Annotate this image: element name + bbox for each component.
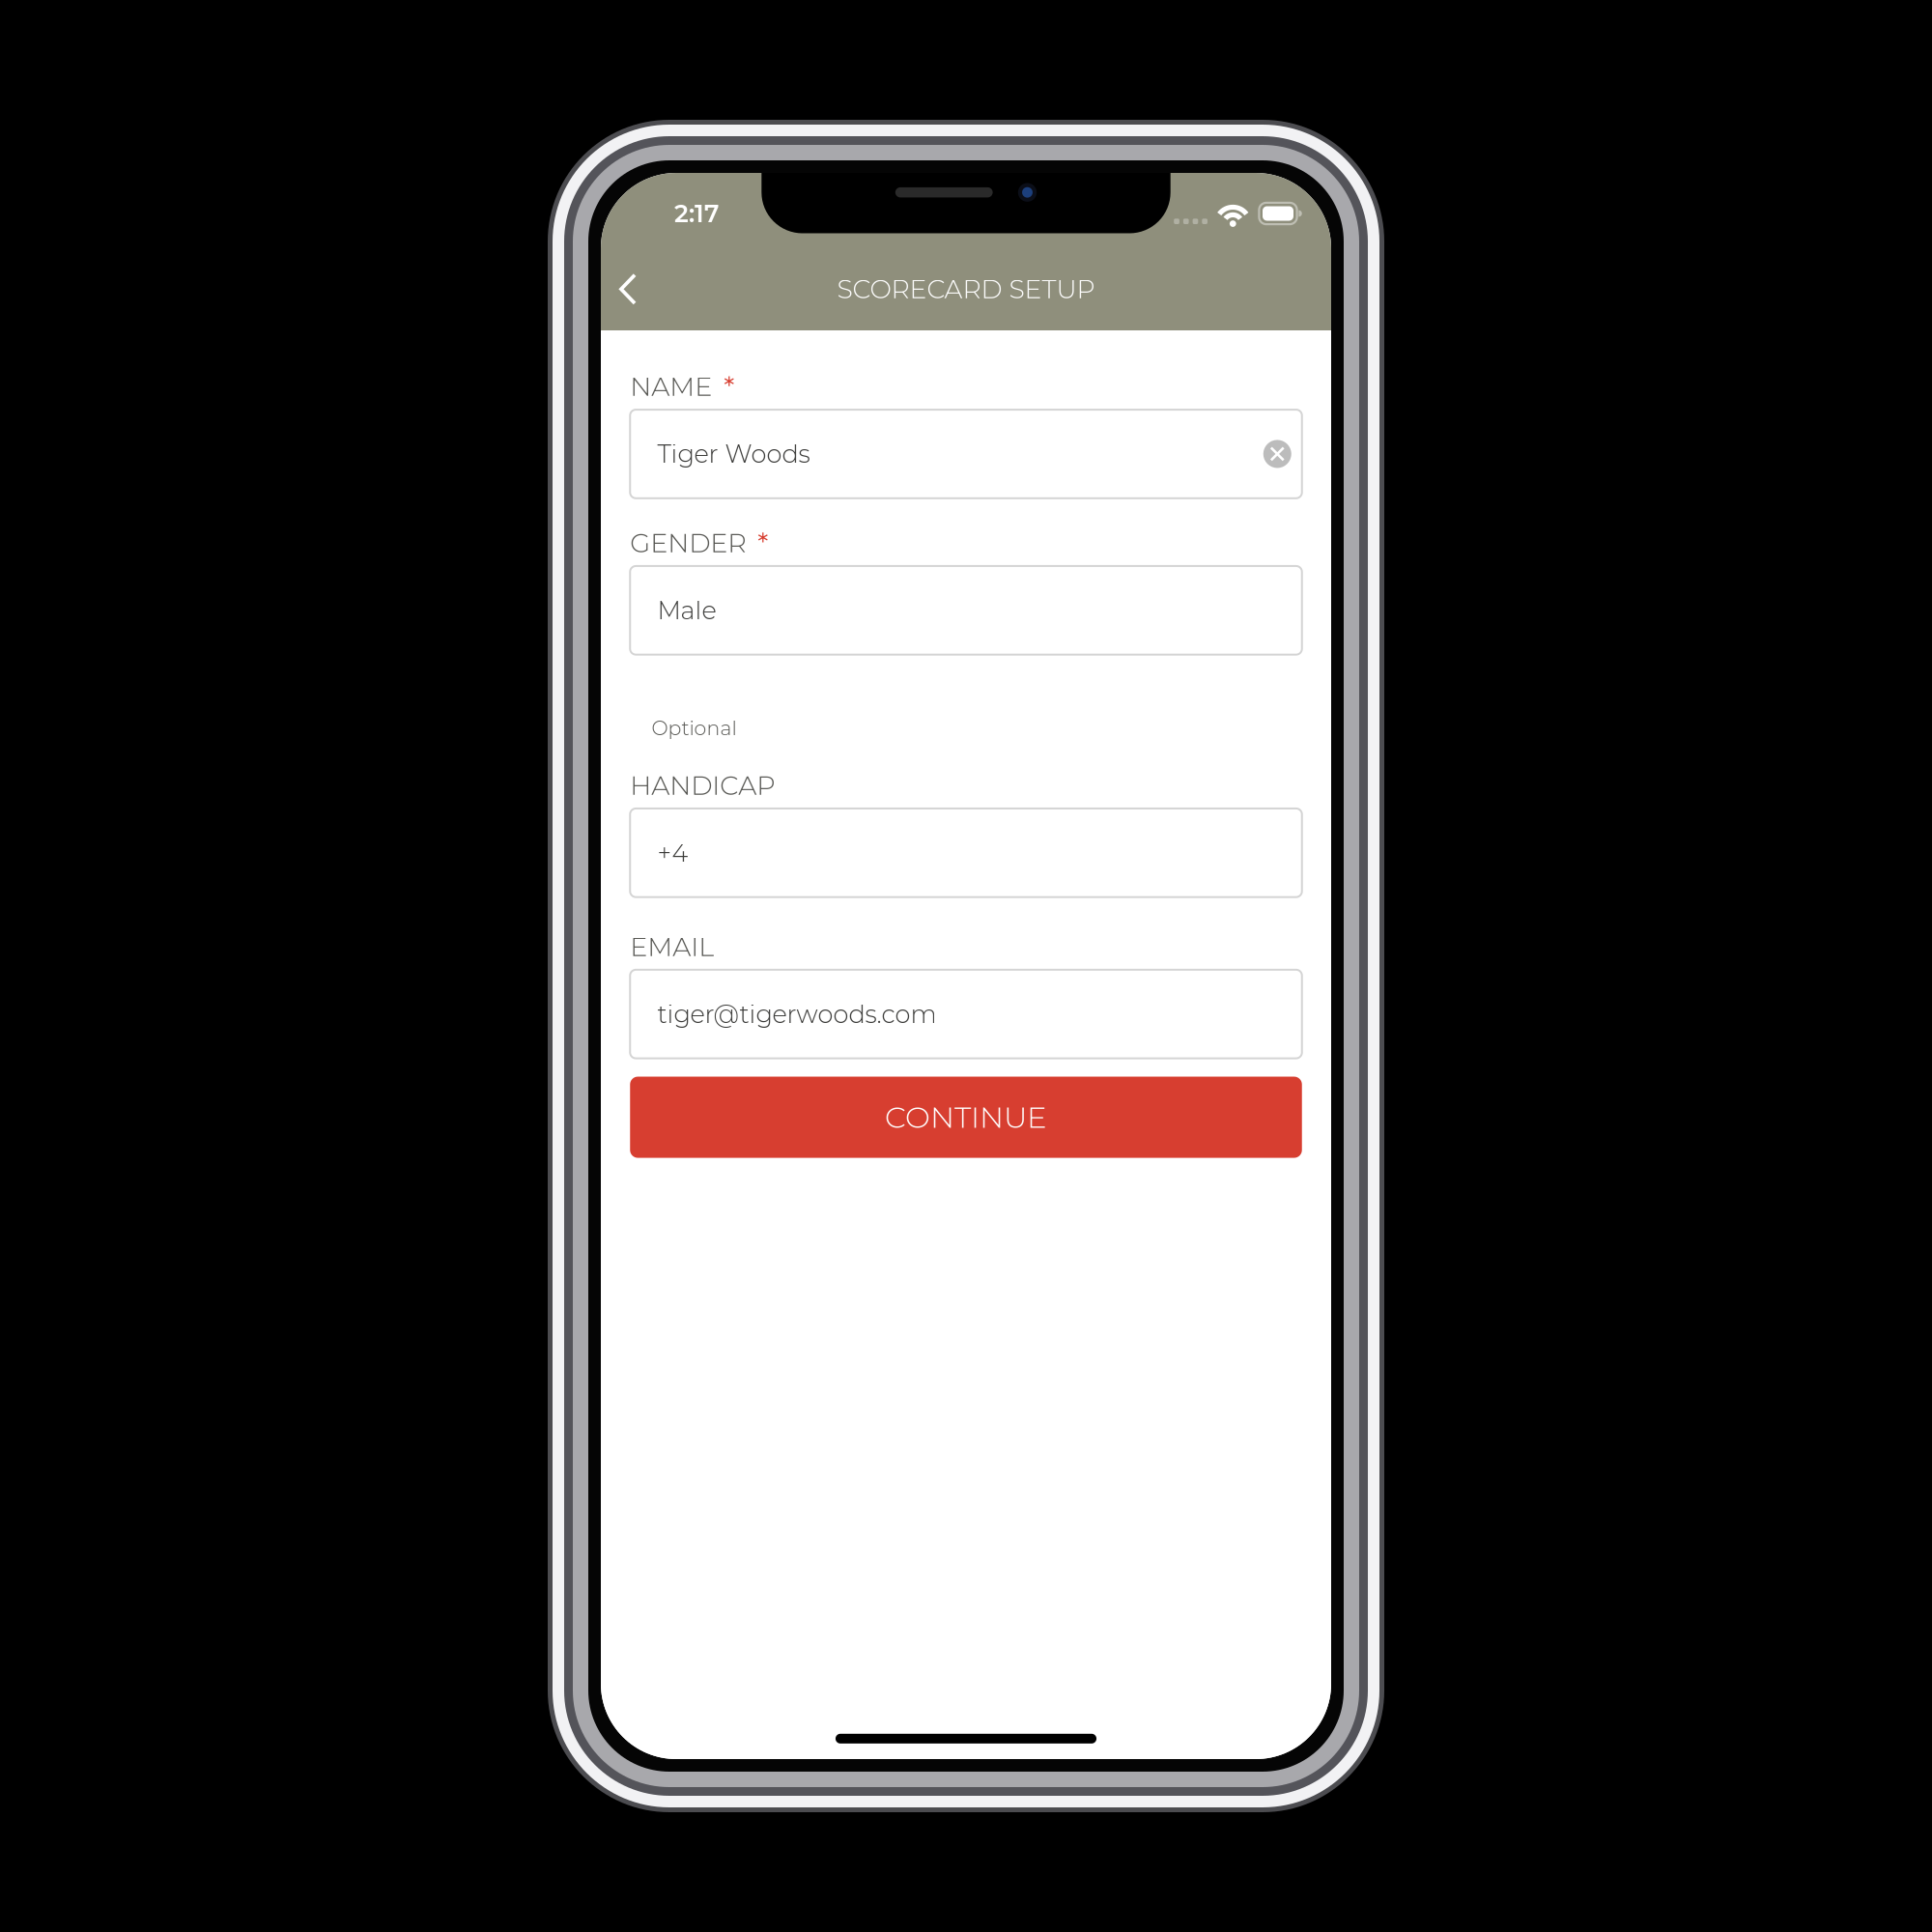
- staticText: HANDICAP: [630, 769, 775, 801]
- staticText: Male: [657, 595, 716, 625]
- staticText: 2:17: [674, 199, 719, 228]
- button[interactable]: Male: [630, 566, 1302, 655]
- staticText: CONTINUE: [885, 1099, 1047, 1135]
- button[interactable]: Tiger Woods: [630, 410, 1302, 498]
- button[interactable]: Back: [601, 254, 655, 324]
- staticText: GENDER: [630, 527, 746, 559]
- staticText: *: [724, 370, 734, 403]
- staticText: Tiger Woods: [657, 439, 810, 469]
- button[interactable]: CONTINUE: [630, 1077, 1302, 1158]
- staticText: *: [758, 526, 768, 560]
- staticText: SCORECARD SETUP: [837, 273, 1095, 305]
- staticText: +4: [657, 838, 688, 868]
- staticText: NAME: [630, 371, 712, 403]
- staticText: tiger@tigerwoods.com: [657, 999, 937, 1029]
- staticText: Optional: [651, 716, 736, 740]
- staticText: EMAIL: [630, 931, 714, 963]
- button[interactable]: +4: [630, 808, 1302, 897]
- button[interactable]: tiger@tigerwoods.com: [630, 970, 1302, 1058]
